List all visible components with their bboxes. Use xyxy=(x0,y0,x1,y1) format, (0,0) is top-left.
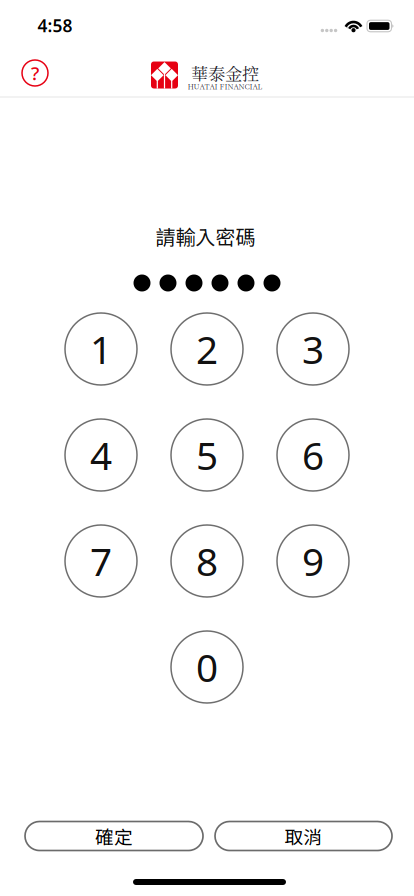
staticText: 4:58 xyxy=(37,14,72,37)
staticText: 1 xyxy=(90,323,112,375)
staticText: 9 xyxy=(302,535,324,587)
staticText: 取消 xyxy=(284,822,322,849)
staticText: 0 xyxy=(196,641,218,693)
button[interactable]: Help xyxy=(13,51,57,95)
button[interactable]: 確定 xyxy=(25,821,203,850)
staticText: 3 xyxy=(302,323,324,375)
button[interactable]: 5 xyxy=(171,419,243,491)
button[interactable]: 6 xyxy=(277,419,349,491)
staticText: 5 xyxy=(196,429,218,481)
button[interactable]: 2 xyxy=(171,313,243,385)
staticText: 6 xyxy=(302,429,324,481)
staticText: 確定 xyxy=(95,822,133,849)
button[interactable]: 0 xyxy=(171,631,243,703)
button[interactable]: 8 xyxy=(171,525,243,597)
staticText: 8 xyxy=(196,535,218,587)
staticText: 4 xyxy=(90,429,112,481)
button[interactable]: 7 xyxy=(65,525,137,597)
staticText: ? xyxy=(31,61,39,85)
button[interactable]: 3 xyxy=(277,313,349,385)
button[interactable]: 取消 xyxy=(215,821,392,850)
staticText: 請輸入密碼 xyxy=(155,221,255,250)
staticText: 2 xyxy=(196,323,218,375)
button[interactable]: 4 xyxy=(65,419,137,491)
button[interactable]: 1 xyxy=(65,313,137,385)
staticText: HUATAI FINANCIAL xyxy=(187,80,262,91)
staticText: 華泰金控 xyxy=(191,60,259,85)
button[interactable]: 9 xyxy=(277,525,349,597)
staticText: 7 xyxy=(90,535,112,587)
